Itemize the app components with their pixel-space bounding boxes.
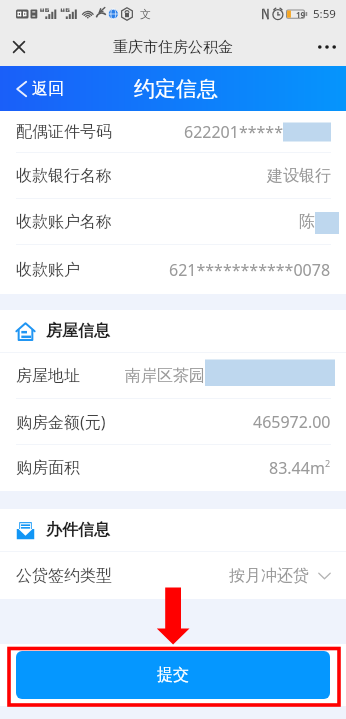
button[interactable]: 提交 [16,651,330,699]
button[interactable]: 返回 [16,79,64,99]
staticText: 房屋信息 [46,321,110,341]
staticText: 提交 [157,665,189,685]
button[interactable]: 公贷签约类型 [0,552,346,599]
staticText: 按月冲还贷 [229,566,309,586]
staticText: 配偶证件号码 [16,122,112,142]
staticText: 收款账户名称 [16,212,112,232]
staticText: 南岸区茶园 [125,366,205,386]
staticText: 5:59 [313,6,336,22]
staticText: 收款银行名称 [16,166,112,186]
staticText: 购房面积 [16,458,80,478]
staticText: 购房金额(元) [16,411,106,433]
button[interactable]: 购房金额(元) [0,399,346,445]
staticText: 公贷签约类型 [16,566,112,586]
staticText: 收款账户 [16,260,80,280]
staticText: 621***********0078 [169,259,331,281]
button[interactable]: Close [0,28,38,66]
staticText: 622201***** [184,121,283,143]
staticText: 465972.00 [253,411,331,433]
staticText: 重庆市住房公积金 [113,38,233,57]
staticText: 办件信息 [46,520,110,540]
button[interactable]: More options [308,28,346,66]
staticText: 返回 [32,79,64,99]
button[interactable]: 房屋地址 [0,353,346,399]
button[interactable]: 收款账户 [0,245,346,294]
button[interactable]: 购房面积 [0,445,346,491]
staticText: 约定信息 [134,76,218,102]
staticText: 19 [296,9,306,20]
staticText: 2 [325,457,331,469]
staticText: 陈 [299,212,315,232]
staticText: 建设银行 [267,166,331,186]
button[interactable]: 配偶证件号码 [0,111,346,153]
staticText: 文 [140,7,151,21]
staticText: 房屋地址 [16,366,80,386]
staticText: 83.44m [269,457,325,479]
button[interactable]: 收款账户名称 [0,199,346,245]
button[interactable]: 收款银行名称 [0,153,346,199]
